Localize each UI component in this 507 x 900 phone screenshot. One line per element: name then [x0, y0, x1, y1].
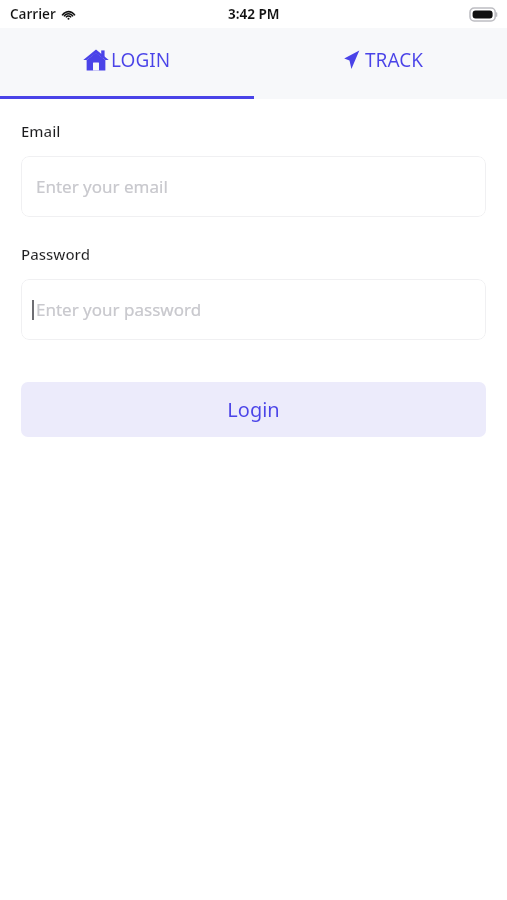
- staticText: 3:42 PM: [228, 5, 280, 23]
- staticText: Enter your email: [36, 175, 168, 198]
- staticText: Enter your password: [36, 298, 202, 321]
- staticText: TRACK: [365, 47, 423, 73]
- button[interactable]: LOGIN: [0, 28, 253, 99]
- button[interactable]: TRACK: [253, 28, 507, 99]
- staticText: Login: [227, 396, 280, 423]
- button[interactable]: Login: [21, 382, 486, 437]
- staticText: Carrier: [10, 5, 56, 23]
- button[interactable]: Enter your password: [21, 279, 486, 340]
- button[interactable]: Enter your email: [21, 156, 486, 217]
- staticText: Password: [21, 244, 90, 264]
- staticText: LOGIN: [111, 47, 171, 73]
- staticText: Email: [21, 121, 61, 141]
